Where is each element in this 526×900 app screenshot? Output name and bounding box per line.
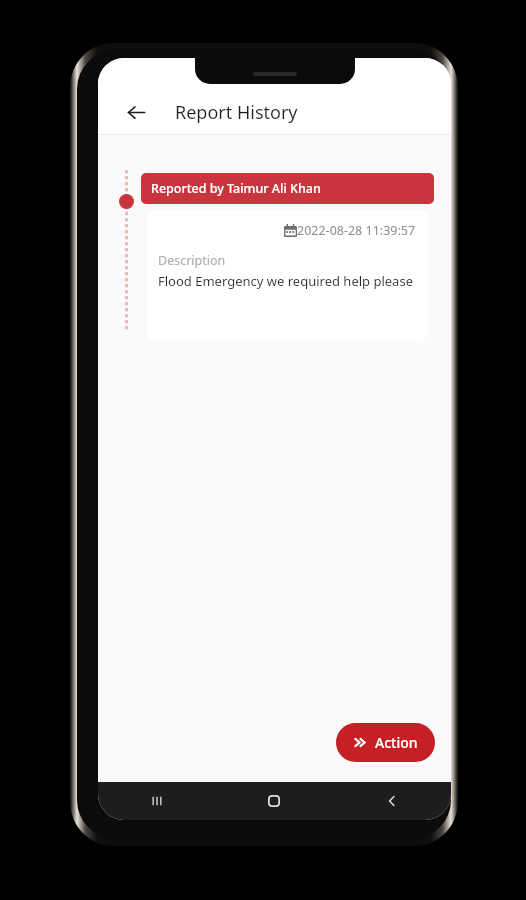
staticText: Description <box>158 252 226 269</box>
staticText: 2022-08-28 11:39:57 <box>297 222 416 239</box>
staticText: Action <box>375 733 418 752</box>
button[interactable]: Recent apps <box>98 782 215 820</box>
button[interactable]: Reported by Taimur Ali Khan <box>141 173 434 204</box>
button[interactable]: Home <box>215 782 333 820</box>
staticText: Report History <box>175 100 298 125</box>
button[interactable]: Back <box>333 782 451 820</box>
button[interactable]: Action <box>336 723 435 762</box>
button[interactable]: Back <box>120 96 152 128</box>
staticText: Flood Emergency we required help please <box>158 272 413 290</box>
button[interactable]: 2022-08-28 11:39:57 <box>147 210 428 340</box>
staticText: Reported by Taimur Ali Khan <box>151 180 321 197</box>
